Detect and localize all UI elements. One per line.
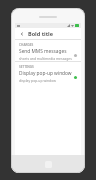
staticText: Bold title <box>28 30 53 37</box>
button[interactable]: Display pop-up window <box>15 70 81 83</box>
staticText: Send MMS messages <box>19 48 67 55</box>
button[interactable]: Back <box>18 30 26 38</box>
button[interactable]: Toggle Display pop-up window <box>72 74 78 80</box>
staticText: CHARGES <box>19 43 34 47</box>
button[interactable]: Toggle Send MMS messages <box>72 52 78 58</box>
staticText: shorts and multimedia messages <box>19 56 72 61</box>
staticText: Display pop-up window <box>19 70 72 77</box>
staticText: display pop-up window <box>19 78 56 83</box>
button[interactable]: Send MMS messages <box>15 48 81 61</box>
staticText: SETTINGS <box>19 65 34 69</box>
